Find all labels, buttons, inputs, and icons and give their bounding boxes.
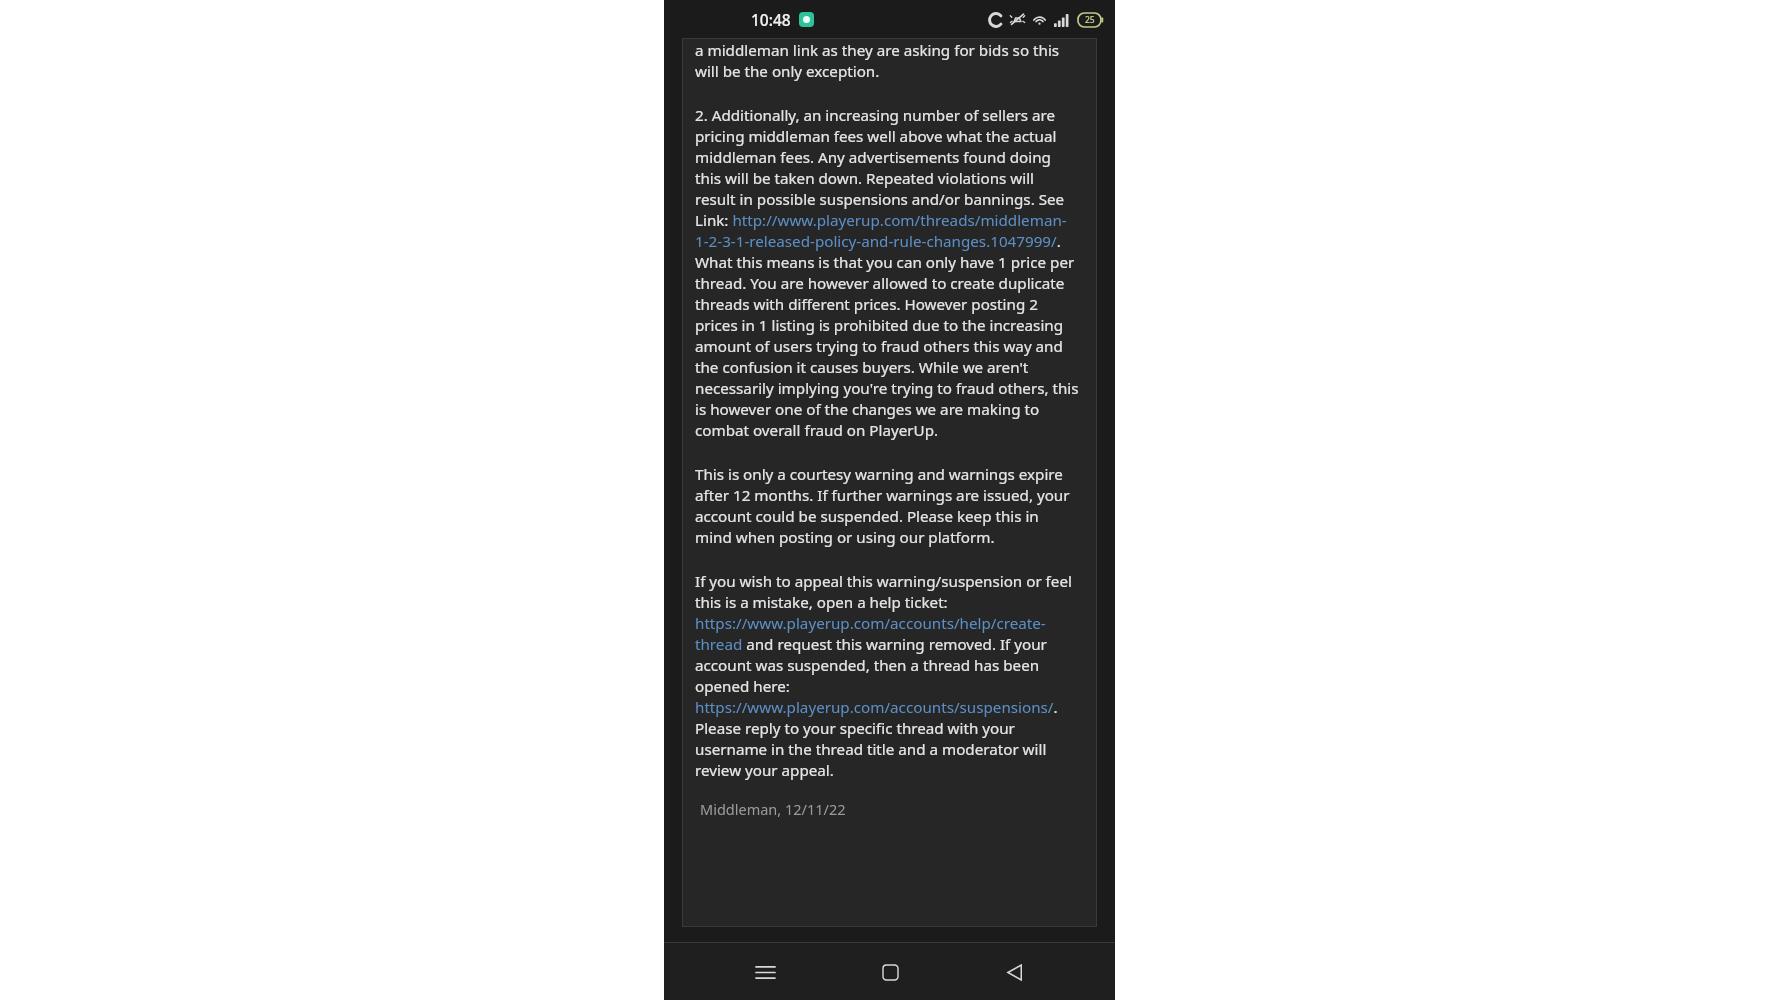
- staticText: review your appeal.: [695, 760, 1084, 781]
- staticText: combat overall fraud on PlayerUp.: [695, 420, 1084, 441]
- staticText: the confusion it causes buyers. While we…: [695, 357, 1084, 378]
- staticText: username in the thread title and a moder…: [695, 739, 1084, 760]
- staticText: https://www.playerup.com/accounts/help/c…: [695, 613, 1084, 634]
- staticText: pricing middleman fees well above what t…: [695, 126, 1084, 147]
- staticText: 2. Additionally, an increasing number of…: [695, 105, 1084, 126]
- staticText: account could be suspended. Please keep …: [695, 506, 1084, 527]
- staticText: necessarily implying you're trying to fr…: [695, 378, 1084, 399]
- staticText: thread. You are however allowed to creat…: [695, 273, 1084, 294]
- button[interactable]: Home: [866, 948, 914, 996]
- button[interactable]: a middleman link as they are asking for …: [682, 38, 1097, 927]
- staticText: If you wish to appeal this warning/suspe…: [695, 571, 1084, 592]
- button[interactable]: Back: [990, 948, 1038, 996]
- staticText: will be the only exception.: [695, 61, 1084, 82]
- staticText: Link: http://www.playerup.com/threads/mi…: [695, 210, 1084, 231]
- staticText: amount of users trying to fraud others t…: [695, 336, 1084, 357]
- staticText: this is a mistake, open a help ticket:: [695, 592, 1084, 613]
- staticText: https://www.playerup.com/accounts/suspen…: [695, 697, 1084, 718]
- staticText: 10:48: [751, 9, 791, 30]
- staticText: result in possible suspensions and/or ba…: [695, 189, 1084, 210]
- staticText: this will be taken down. Repeated violat…: [695, 168, 1084, 189]
- staticText: Please reply to your specific thread wit…: [695, 718, 1084, 739]
- staticText: What this means is that you can only hav…: [695, 252, 1084, 273]
- staticText: account was suspended, then a thread has…: [695, 655, 1084, 676]
- button[interactable]: Recent apps: [741, 948, 789, 996]
- staticText: 1-2-3-1-released-policy-and-rule-changes…: [695, 231, 1084, 252]
- staticText: middleman fees. Any advertisements found…: [695, 147, 1084, 168]
- staticText: prices in 1 listing is prohibited due to…: [695, 315, 1084, 336]
- staticText: Middleman, 12/11/22: [700, 799, 846, 819]
- staticText: a middleman link as they are asking for …: [695, 40, 1084, 61]
- staticText: mind when posting or using our platform.: [695, 527, 1084, 548]
- staticText: opened here:: [695, 676, 1084, 697]
- staticText: threads with different prices. However p…: [695, 294, 1084, 315]
- staticText: is however one of the changes we are mak…: [695, 399, 1084, 420]
- staticText: This is only a courtesy warning and warn…: [695, 464, 1084, 485]
- staticText: 25: [1085, 14, 1095, 26]
- staticText: after 12 months. If further warnings are…: [695, 485, 1084, 506]
- staticText: thread and request this warning removed.…: [695, 634, 1084, 655]
